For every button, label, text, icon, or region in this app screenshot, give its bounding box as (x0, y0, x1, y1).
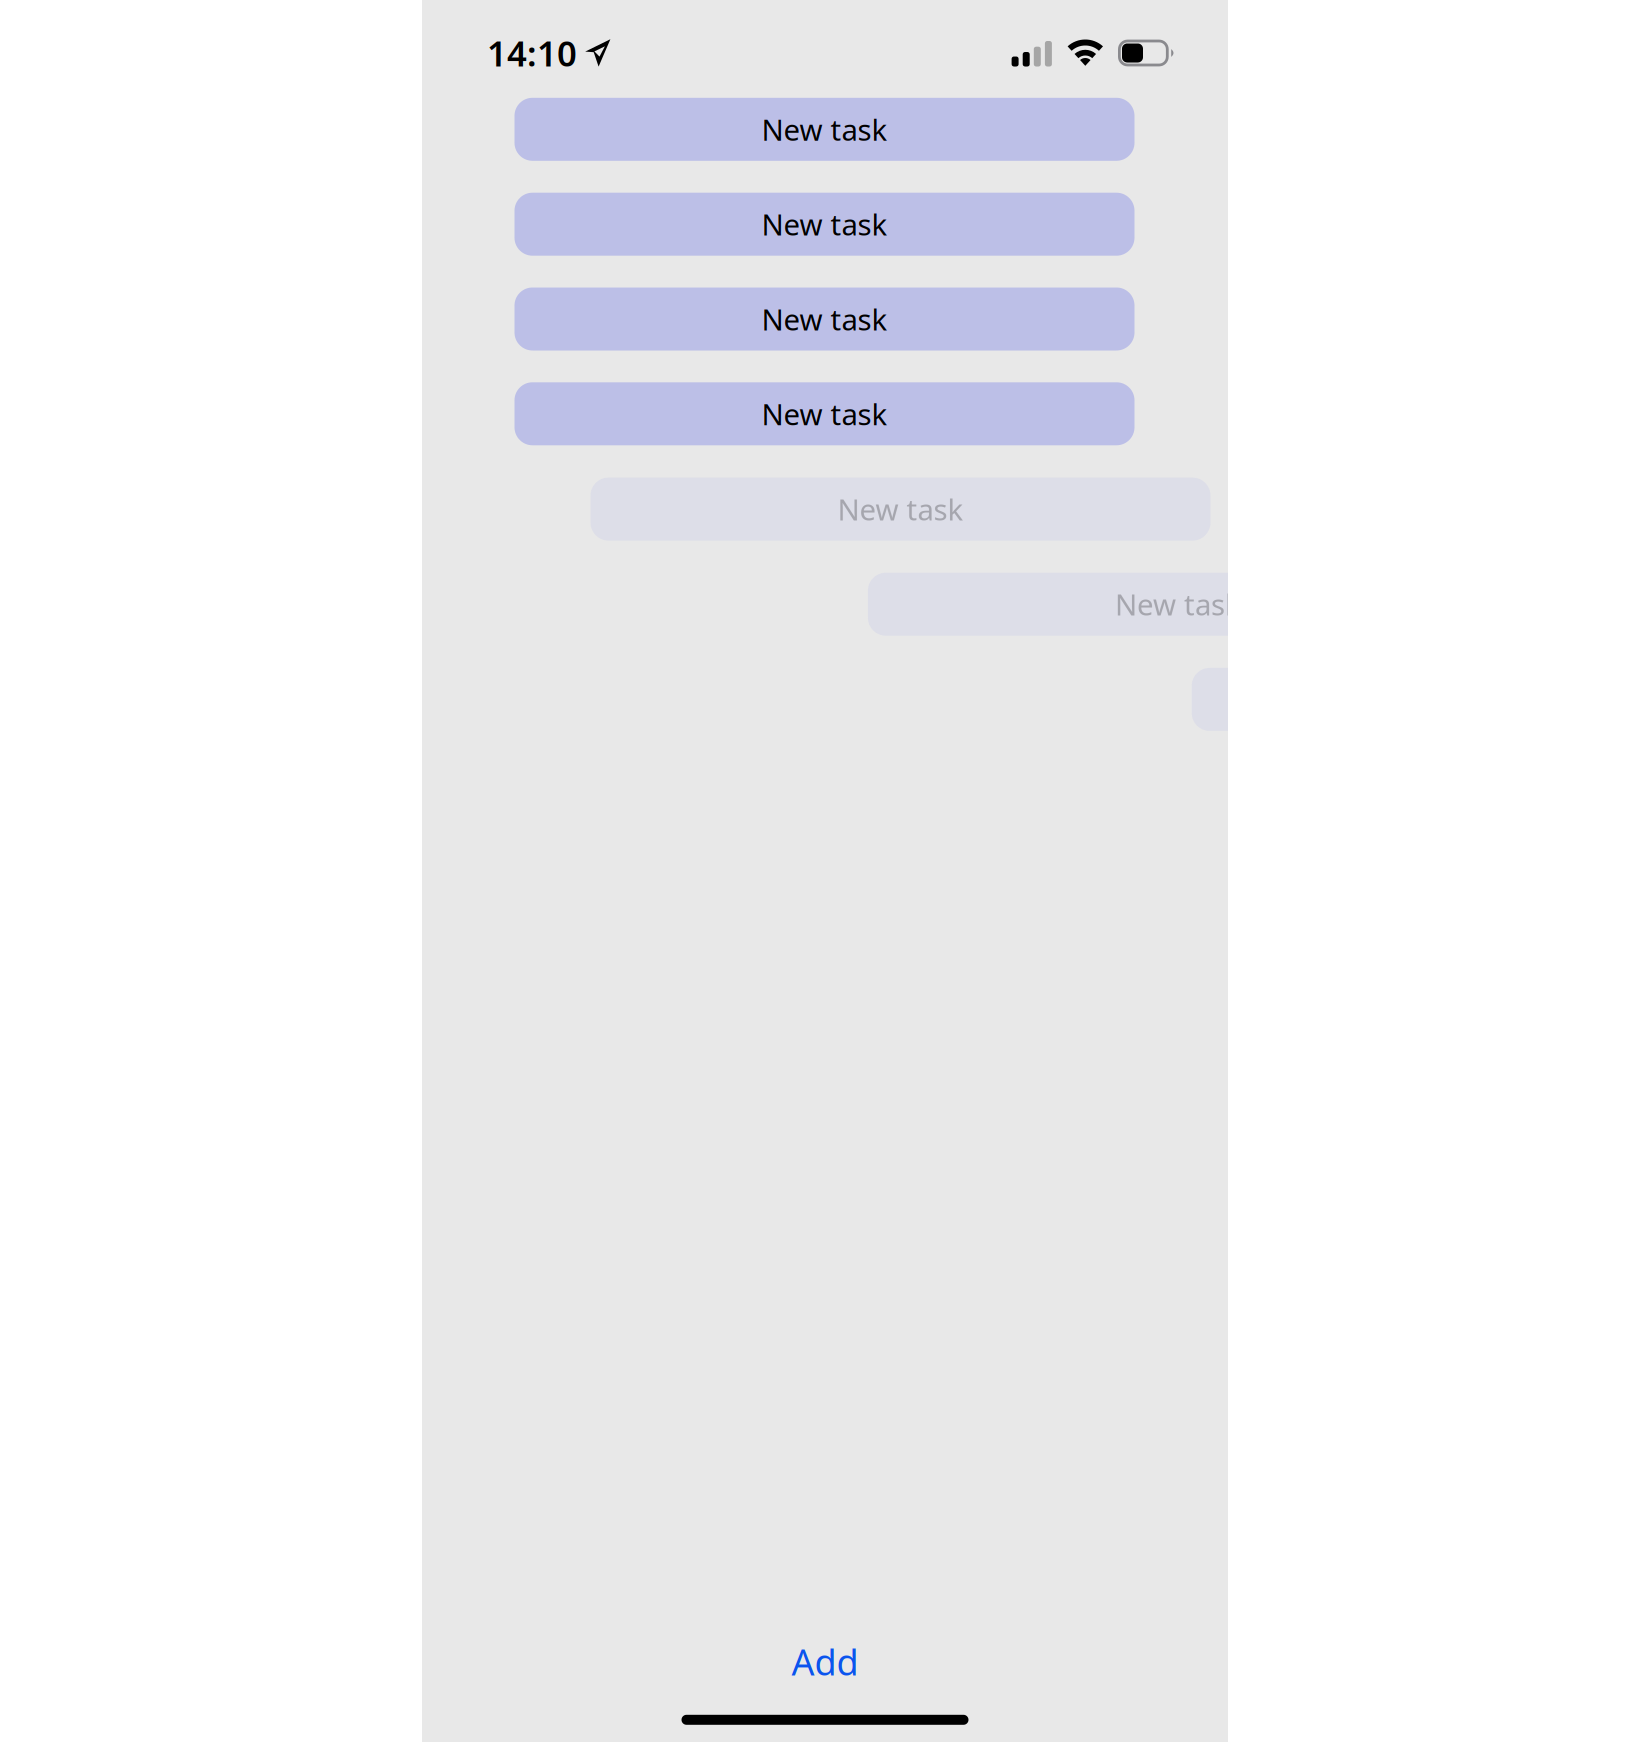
button[interactable]: New task (514, 382, 1134, 445)
button[interactable]: New task (514, 98, 1134, 161)
button[interactable]: New task (514, 193, 1134, 256)
button[interactable]: New task (1192, 668, 1650, 731)
button[interactable]: New task (514, 287, 1134, 350)
button[interactable]: New task (868, 573, 1488, 636)
staticText: New task (761, 394, 887, 433)
staticText: New task (761, 299, 887, 338)
staticText: New task (837, 490, 963, 529)
staticText: Add (791, 1638, 858, 1685)
staticText: New task (761, 110, 887, 149)
staticText: 14:10 (487, 30, 577, 76)
button[interactable]: Add (422, 1635, 1228, 1687)
staticText: New task (1115, 585, 1241, 624)
staticText: New task (761, 205, 887, 244)
button[interactable]: New task (590, 478, 1210, 541)
